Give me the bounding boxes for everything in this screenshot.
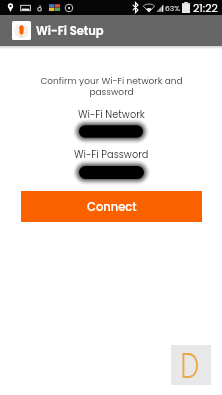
- button[interactable]: [76, 122, 146, 141]
- staticText: Connect: [87, 199, 137, 215]
- button[interactable]: [76, 163, 147, 182]
- staticText: 21:22: [193, 0, 218, 15]
- button[interactable]: Connect: [21, 191, 202, 222]
- staticText: Wi-Fi Password: [74, 148, 149, 162]
- staticText: Wi-Fi Network: [78, 108, 145, 122]
- button[interactable]: App icon: [12, 21, 31, 40]
- staticText: Wi-Fi Setup: [36, 23, 104, 39]
- staticText: Confirm your Wi-Fi network and password: [40, 75, 183, 98]
- staticText: 63%: [165, 3, 180, 13]
